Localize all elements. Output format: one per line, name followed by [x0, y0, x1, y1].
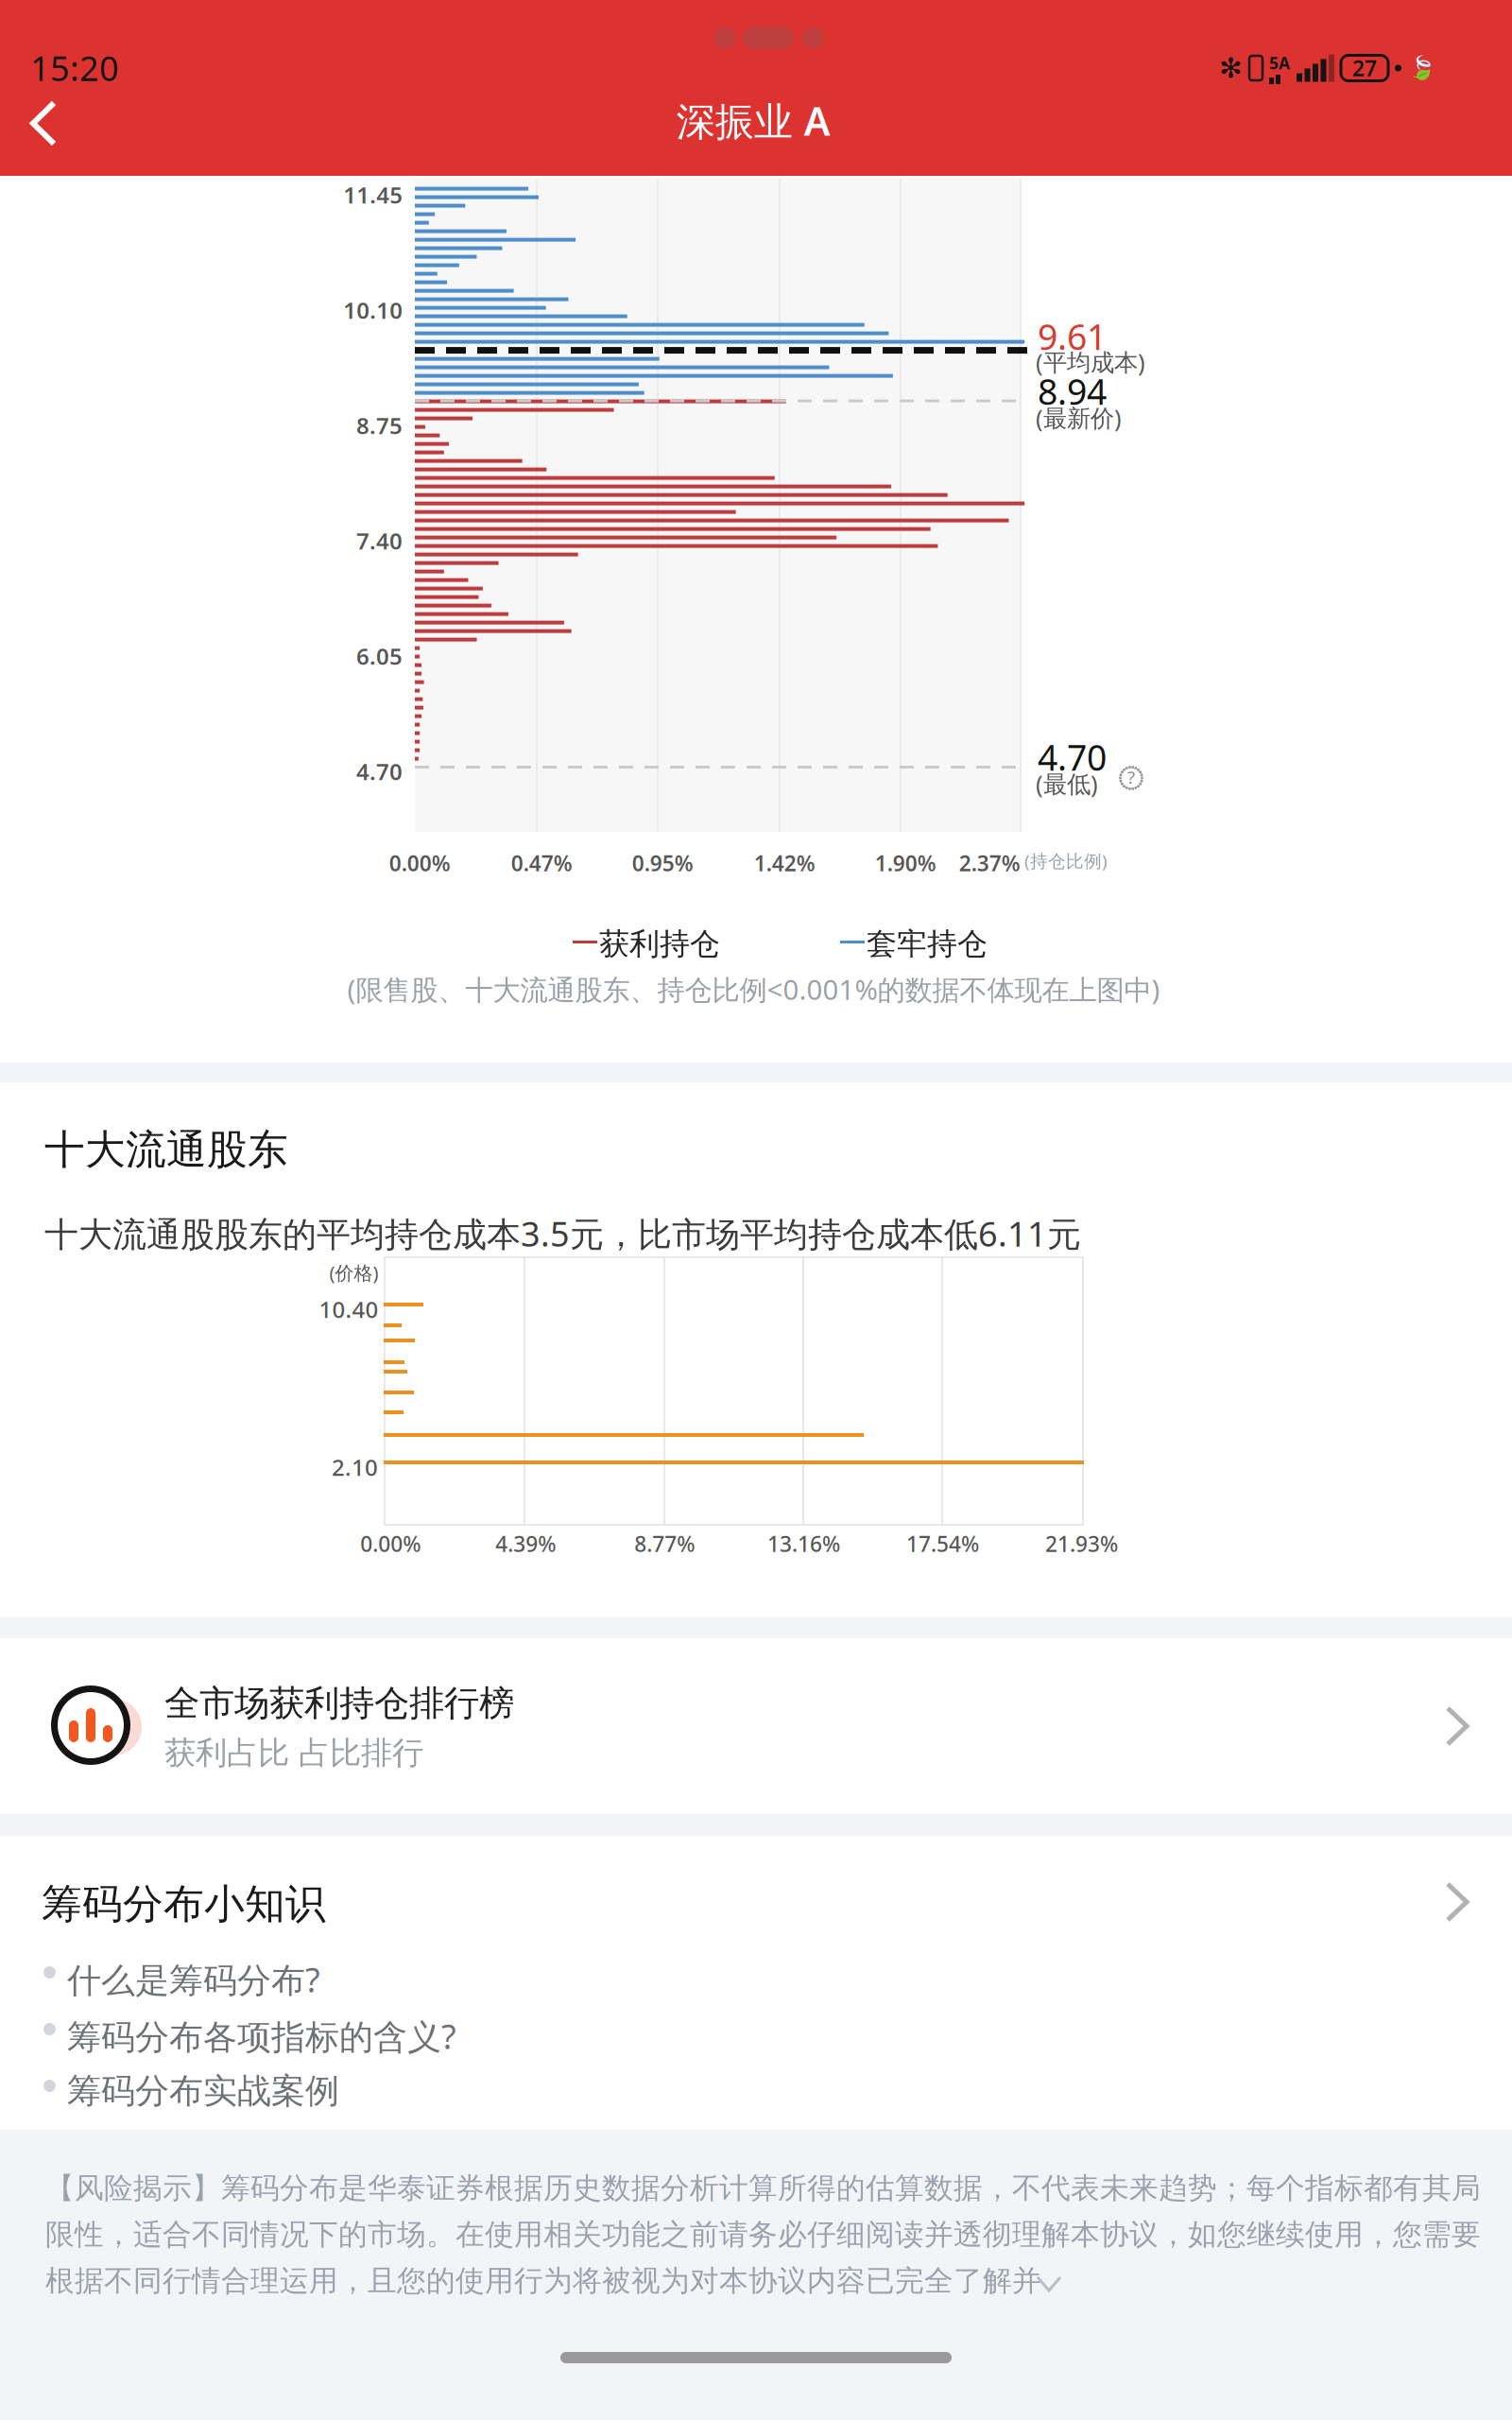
staticText: 十大流通股东	[44, 1125, 288, 1174]
staticText: 17.54%	[906, 1530, 979, 1558]
staticText: 套牢持仓	[867, 925, 988, 963]
staticText: 十大流通股股东的平均持仓成本3.5元，比市场平均持仓成本低6.11元	[44, 1211, 1081, 1256]
button[interactable]: 筹码分布各项指标的含义?	[43, 2010, 629, 2057]
button[interactable]: 全市场获利持仓排行榜	[0, 1638, 1512, 1814]
staticText: 0.47%	[511, 849, 572, 877]
staticText: 0.95%	[632, 849, 693, 877]
staticText: 筹码分布实战案例	[67, 2070, 339, 2112]
staticText: 全市场获利持仓排行榜	[164, 1682, 514, 1725]
staticText: 9.61	[1038, 313, 1107, 360]
staticText: (限售股、十大流通股东、持仓比例<0.001%的数据不体现在上图中)	[347, 971, 1160, 1008]
staticText: 限性，适合不同情况下的市场。在使用相关功能之前请务必仔细阅读并透彻理解本协议，如…	[45, 2217, 1481, 2252]
staticText: 10.10	[343, 295, 403, 325]
staticText: (平均成本)	[1036, 346, 1145, 378]
staticText: 获利占比 占比排行	[164, 1734, 423, 1772]
staticText: 深振业 A	[676, 95, 830, 146]
staticText: 根据不同行情合理运用，且您的使用行为将被视为对本协议内容已完全了解并	[45, 2263, 1041, 2299]
staticText: 6.05	[356, 641, 403, 671]
staticText: 21.93%	[1045, 1530, 1118, 1558]
staticText: ?	[1127, 765, 1135, 789]
staticText: 🍃	[1408, 55, 1436, 81]
staticText: 8.75	[356, 410, 403, 440]
staticText: (最低)	[1036, 768, 1098, 799]
staticText: 5A	[1269, 52, 1290, 74]
staticText: 筹码分布小知识	[42, 1879, 326, 1929]
staticText: 获利持仓	[599, 925, 720, 963]
button[interactable]: 筹码分布实战案例	[43, 2066, 629, 2114]
staticText: 4.70	[1038, 734, 1107, 780]
staticText: 4.70	[356, 756, 403, 786]
staticText: (最新价)	[1036, 402, 1122, 434]
staticText: ✻	[1219, 52, 1243, 84]
staticText: 13.16%	[767, 1530, 840, 1558]
staticText: 7.40	[356, 526, 403, 556]
staticText: 8.77%	[634, 1530, 695, 1558]
staticText: (价格)	[329, 1260, 378, 1285]
button[interactable]: 什么是筹码分布?	[43, 1953, 629, 2000]
button[interactable]: More	[1448, 1884, 1467, 1920]
staticText: 1.42%	[754, 849, 815, 877]
staticText: 15:20	[30, 45, 119, 91]
staticText: 10.40	[319, 1294, 378, 1324]
staticText: 筹码分布各项指标的含义?	[67, 2014, 456, 2059]
button[interactable]: Back	[11, 81, 96, 166]
staticText: 【风险揭示】筹码分布是华泰证券根据历史数据分析计算所得的估算数据，不代表未来趋势…	[45, 2170, 1481, 2206]
staticText: (持仓比例)	[1024, 849, 1108, 872]
staticText: 27	[1352, 54, 1377, 82]
staticText: 0.00%	[389, 849, 450, 877]
staticText: 2.37%	[959, 849, 1020, 877]
staticText: 4.39%	[496, 1530, 556, 1558]
staticText: 11.45	[343, 180, 403, 210]
staticText: 1.90%	[875, 849, 936, 877]
staticText: 0.00%	[360, 1530, 421, 1558]
staticText: 2.10	[332, 1452, 378, 1482]
staticText: 什么是筹码分布?	[67, 1957, 320, 2002]
staticText: 8.94	[1038, 368, 1107, 415]
